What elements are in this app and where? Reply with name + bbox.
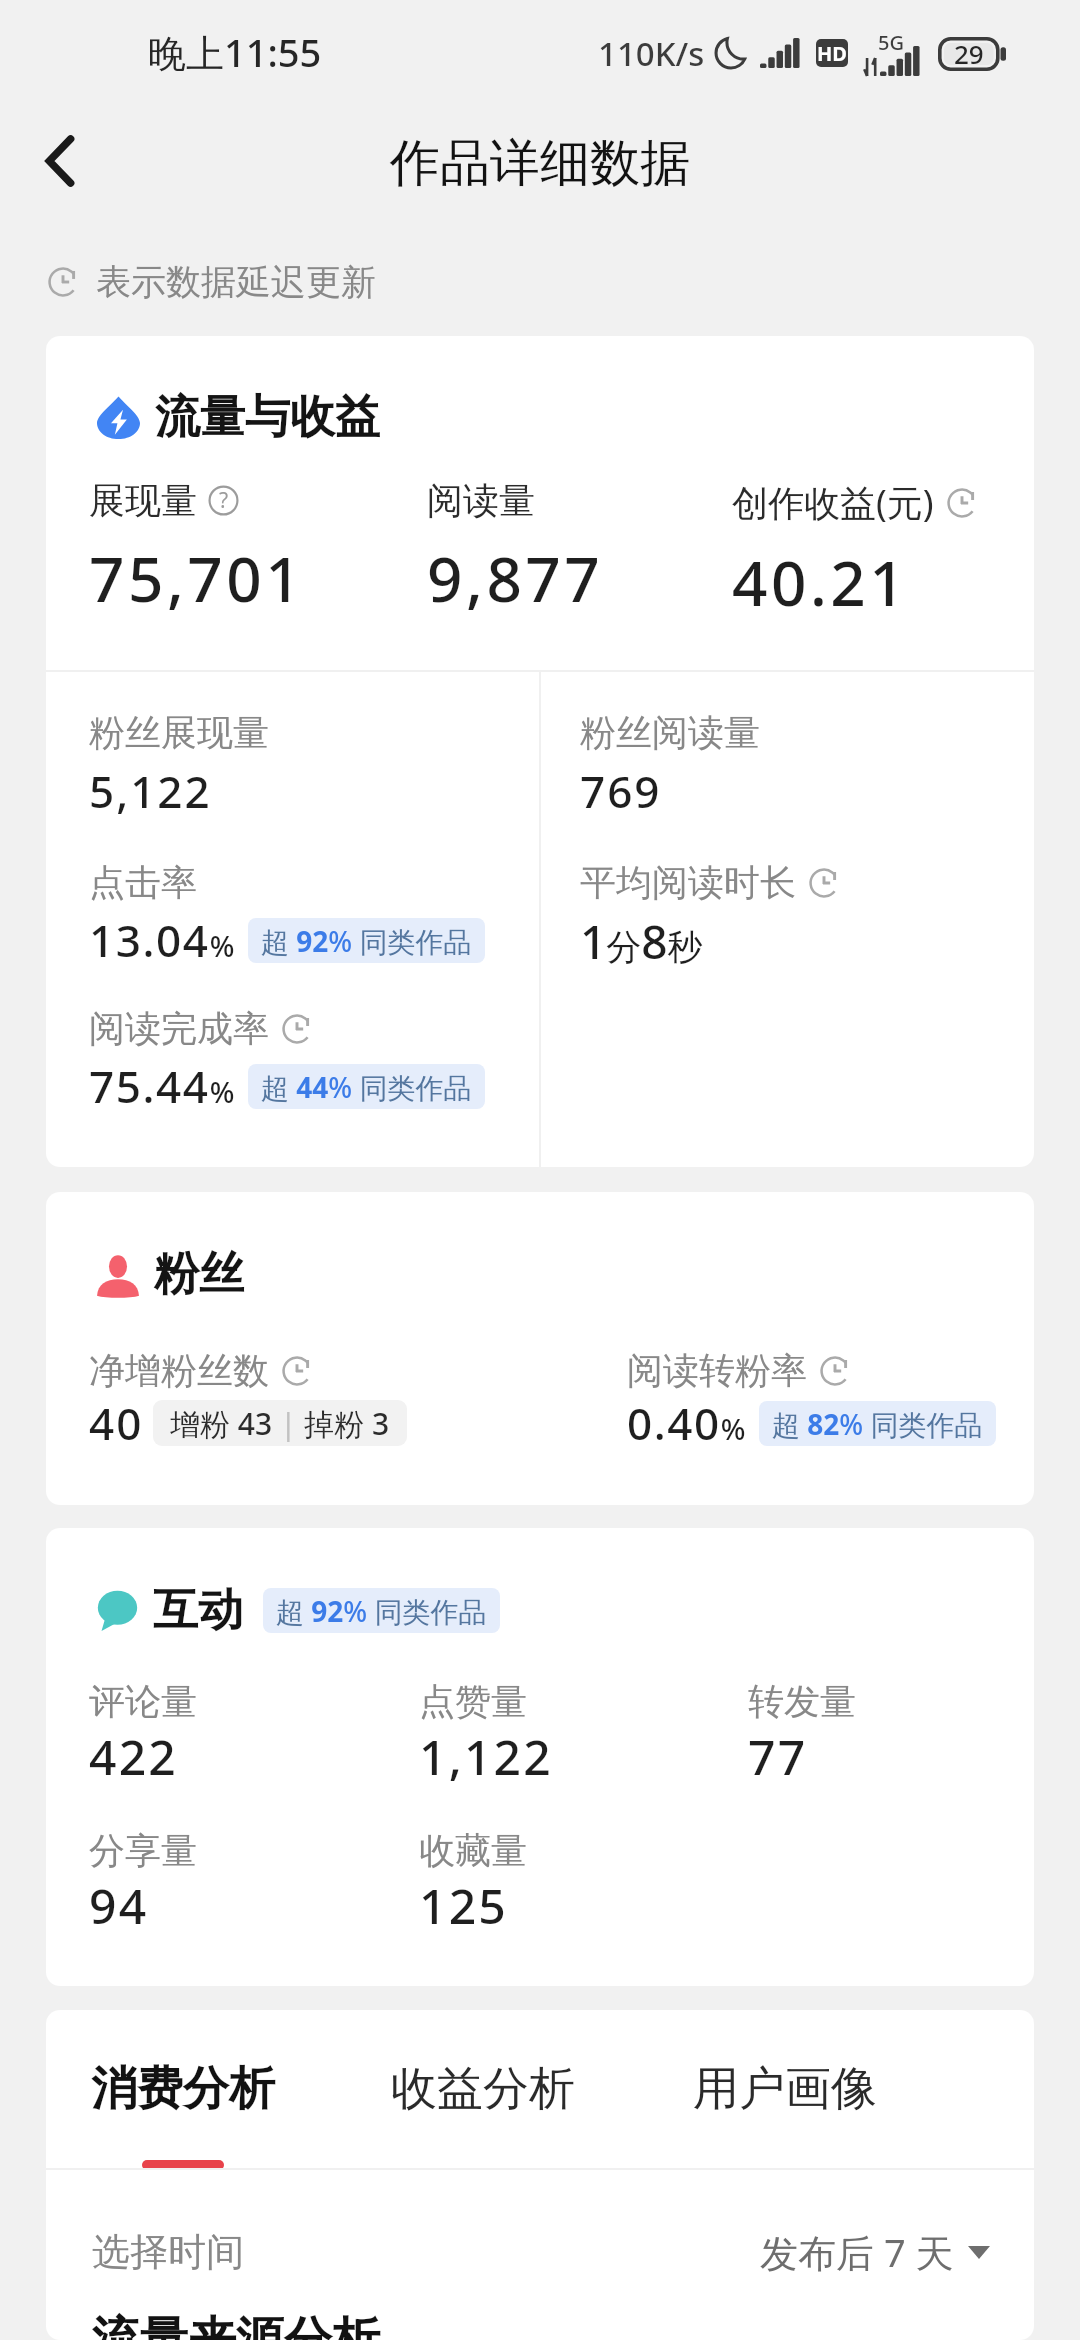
- staticText: HD: [817, 40, 847, 67]
- staticText: 40.21: [732, 540, 909, 624]
- staticText: 展现量: [89, 478, 197, 523]
- staticText: 1分8秒: [580, 910, 703, 973]
- staticText: 9,877: [427, 536, 604, 620]
- staticText: 5,122: [89, 761, 212, 821]
- staticText: 粉丝展现量: [89, 710, 269, 755]
- staticText: 超 82% 同类作品: [772, 1405, 983, 1443]
- staticText: 阅读转粉率: [627, 1348, 807, 1393]
- staticText: 表示数据延迟更新: [96, 260, 376, 304]
- staticText: ?: [219, 485, 229, 514]
- staticText: 发布后 7 天: [760, 2226, 954, 2278]
- staticText: 阅读量: [427, 478, 535, 523]
- staticText: 用户画像: [693, 2060, 877, 2118]
- staticText: 晚上11:55: [148, 26, 322, 78]
- staticText: 点赞量: [419, 1679, 527, 1724]
- button[interactable]: 用户画像: [689, 2060, 881, 2118]
- staticText: 5G: [878, 29, 904, 56]
- staticText: 阅读完成率: [89, 1006, 269, 1051]
- staticText: 消费分析: [91, 2060, 275, 2118]
- staticText: 75.44%: [89, 1056, 235, 1116]
- staticText: 422: [89, 1724, 178, 1789]
- staticText: 769: [580, 761, 662, 821]
- staticText: 13.04%: [89, 910, 235, 970]
- staticText: 40: [89, 1393, 144, 1453]
- button[interactable]: 消费分析: [87, 2060, 279, 2170]
- staticText: 创作收益(元): [732, 478, 934, 527]
- staticText: 超 92% 同类作品: [261, 922, 472, 960]
- staticText: 净增粉丝数: [89, 1348, 269, 1393]
- staticText: 75,701: [89, 536, 305, 620]
- staticText: 94: [89, 1873, 149, 1938]
- staticText: 29: [954, 36, 984, 71]
- staticText: 点击率: [89, 860, 197, 905]
- staticText: 77: [748, 1724, 808, 1789]
- staticText: 收益分析: [391, 2060, 575, 2118]
- staticText: 粉丝: [154, 1246, 244, 1303]
- staticText: 粉丝阅读量: [580, 710, 760, 755]
- staticText: 110K/s: [598, 31, 705, 76]
- staticText: 分享量: [89, 1828, 197, 1873]
- button[interactable]: 发布后 7 天: [760, 2226, 990, 2278]
- staticText: 流量来源分析: [92, 2310, 380, 2340]
- staticText: 收藏量: [419, 1828, 527, 1873]
- button[interactable]: 收益分析: [387, 2060, 579, 2118]
- staticText: 超 44% 同类作品: [261, 1068, 472, 1106]
- staticText: 超 92% 同类作品: [276, 1592, 487, 1630]
- staticText: 选择时间: [92, 2228, 244, 2276]
- staticText: 互动: [153, 1582, 243, 1639]
- staticText: 评论量: [89, 1679, 197, 1724]
- staticText: 125: [419, 1873, 508, 1938]
- button[interactable]: Back: [24, 125, 96, 197]
- staticText: 1,122: [419, 1724, 553, 1789]
- staticText: 转发量: [748, 1679, 856, 1724]
- staticText: 作品详细数据: [390, 132, 690, 195]
- staticText: 平均阅读时长: [580, 860, 796, 905]
- staticText: 流量与收益: [155, 389, 380, 446]
- staticText: 增粉 43 | 掉粉 3: [170, 1403, 390, 1444]
- staticText: 0.40%: [627, 1393, 746, 1453]
- button[interactable]: What is this metric: [208, 485, 239, 516]
